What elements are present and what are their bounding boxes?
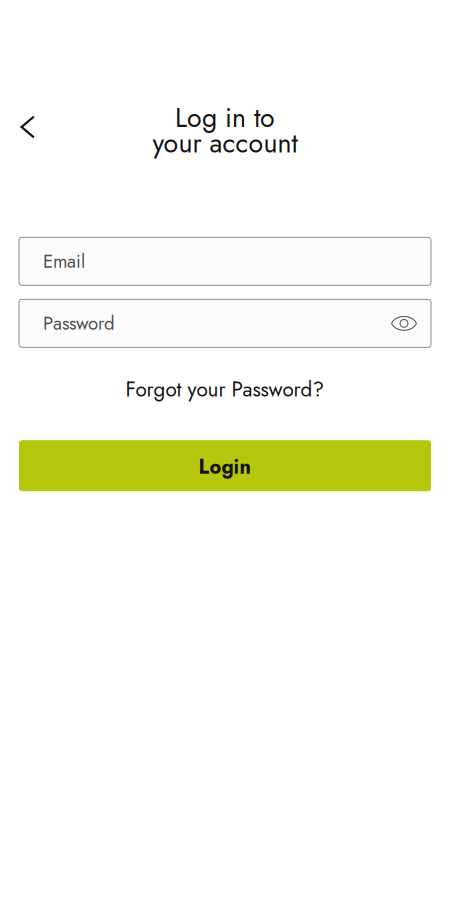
button[interactable]: Back — [6, 105, 50, 149]
staticText: Email — [43, 248, 85, 275]
staticText: Login — [198, 452, 251, 481]
button[interactable]: Forgot your Password? — [115, 368, 334, 410]
button[interactable]: Login — [19, 440, 431, 491]
staticText: Forgot your Password? — [125, 374, 324, 404]
button[interactable]: Password — [19, 299, 431, 347]
staticText: Password — [43, 310, 115, 337]
staticText: your account — [152, 124, 297, 162]
button[interactable]: Email — [19, 237, 431, 285]
staticText: Log in to — [175, 98, 275, 137]
